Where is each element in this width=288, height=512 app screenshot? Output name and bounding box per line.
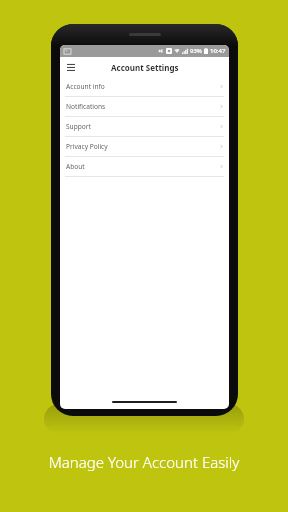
staticText: Support (66, 122, 91, 131)
button[interactable]: Open navigation menu (62, 58, 80, 76)
staticText: 10:47 (210, 47, 226, 55)
button[interactable]: Privacy Policy (60, 137, 229, 156)
button[interactable]: Notifications (60, 97, 229, 116)
staticText: Manage Your Account Easily (0, 452, 288, 472)
staticText: 93% (190, 47, 202, 55)
button[interactable]: Account info (60, 77, 229, 96)
button[interactable]: Support (60, 117, 229, 136)
staticText: Privacy Policy (66, 142, 108, 151)
staticText: About (66, 162, 85, 171)
staticText: Account info (66, 82, 105, 91)
staticText: Notifications (66, 102, 106, 111)
staticText: Account Settings (111, 62, 179, 73)
button[interactable]: About (60, 157, 229, 176)
